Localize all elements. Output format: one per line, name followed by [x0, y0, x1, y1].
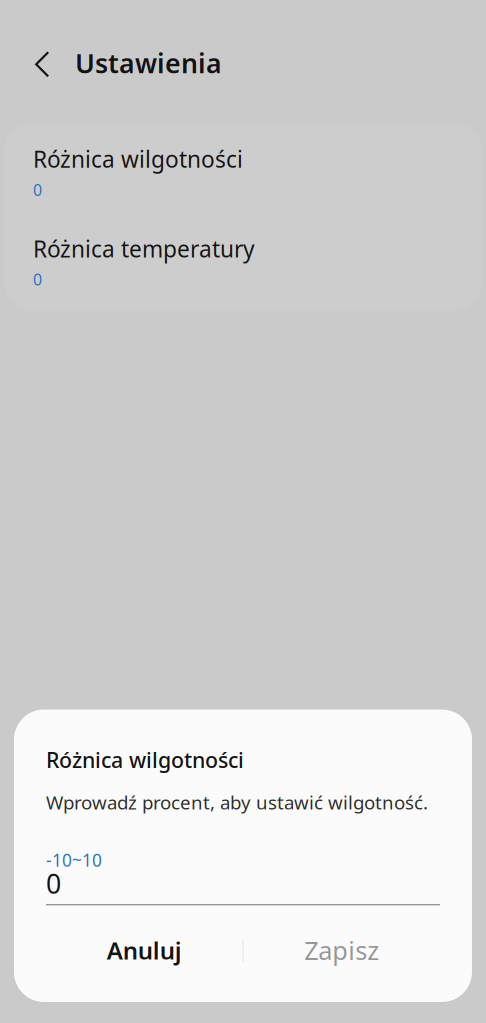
staticText: Anuluj [107, 934, 182, 966]
staticText: Ustawienia [75, 45, 222, 81]
button[interactable]: Zapisz [243, 919, 440, 981]
staticText: 0 [46, 866, 61, 901]
button[interactable]: Wstecz — Ustawienia [0, 32, 240, 90]
button[interactable]: Różnica temperatury [4, 234, 482, 290]
button[interactable]: Różnica wilgotności [4, 144, 482, 200]
staticText: Różnica wilgotności [46, 745, 244, 774]
button[interactable]: Anuluj [46, 920, 242, 980]
staticText: Różnica wilgotności [33, 144, 243, 174]
staticText: Wprowadź procent, aby ustawić wilgotność… [46, 790, 428, 815]
staticText: Zapisz [304, 933, 379, 967]
staticText: Różnica temperatury [33, 234, 255, 264]
staticText: 0 [33, 179, 42, 200]
staticText: 0 [33, 269, 42, 290]
staticText: -10~10 [46, 849, 102, 872]
